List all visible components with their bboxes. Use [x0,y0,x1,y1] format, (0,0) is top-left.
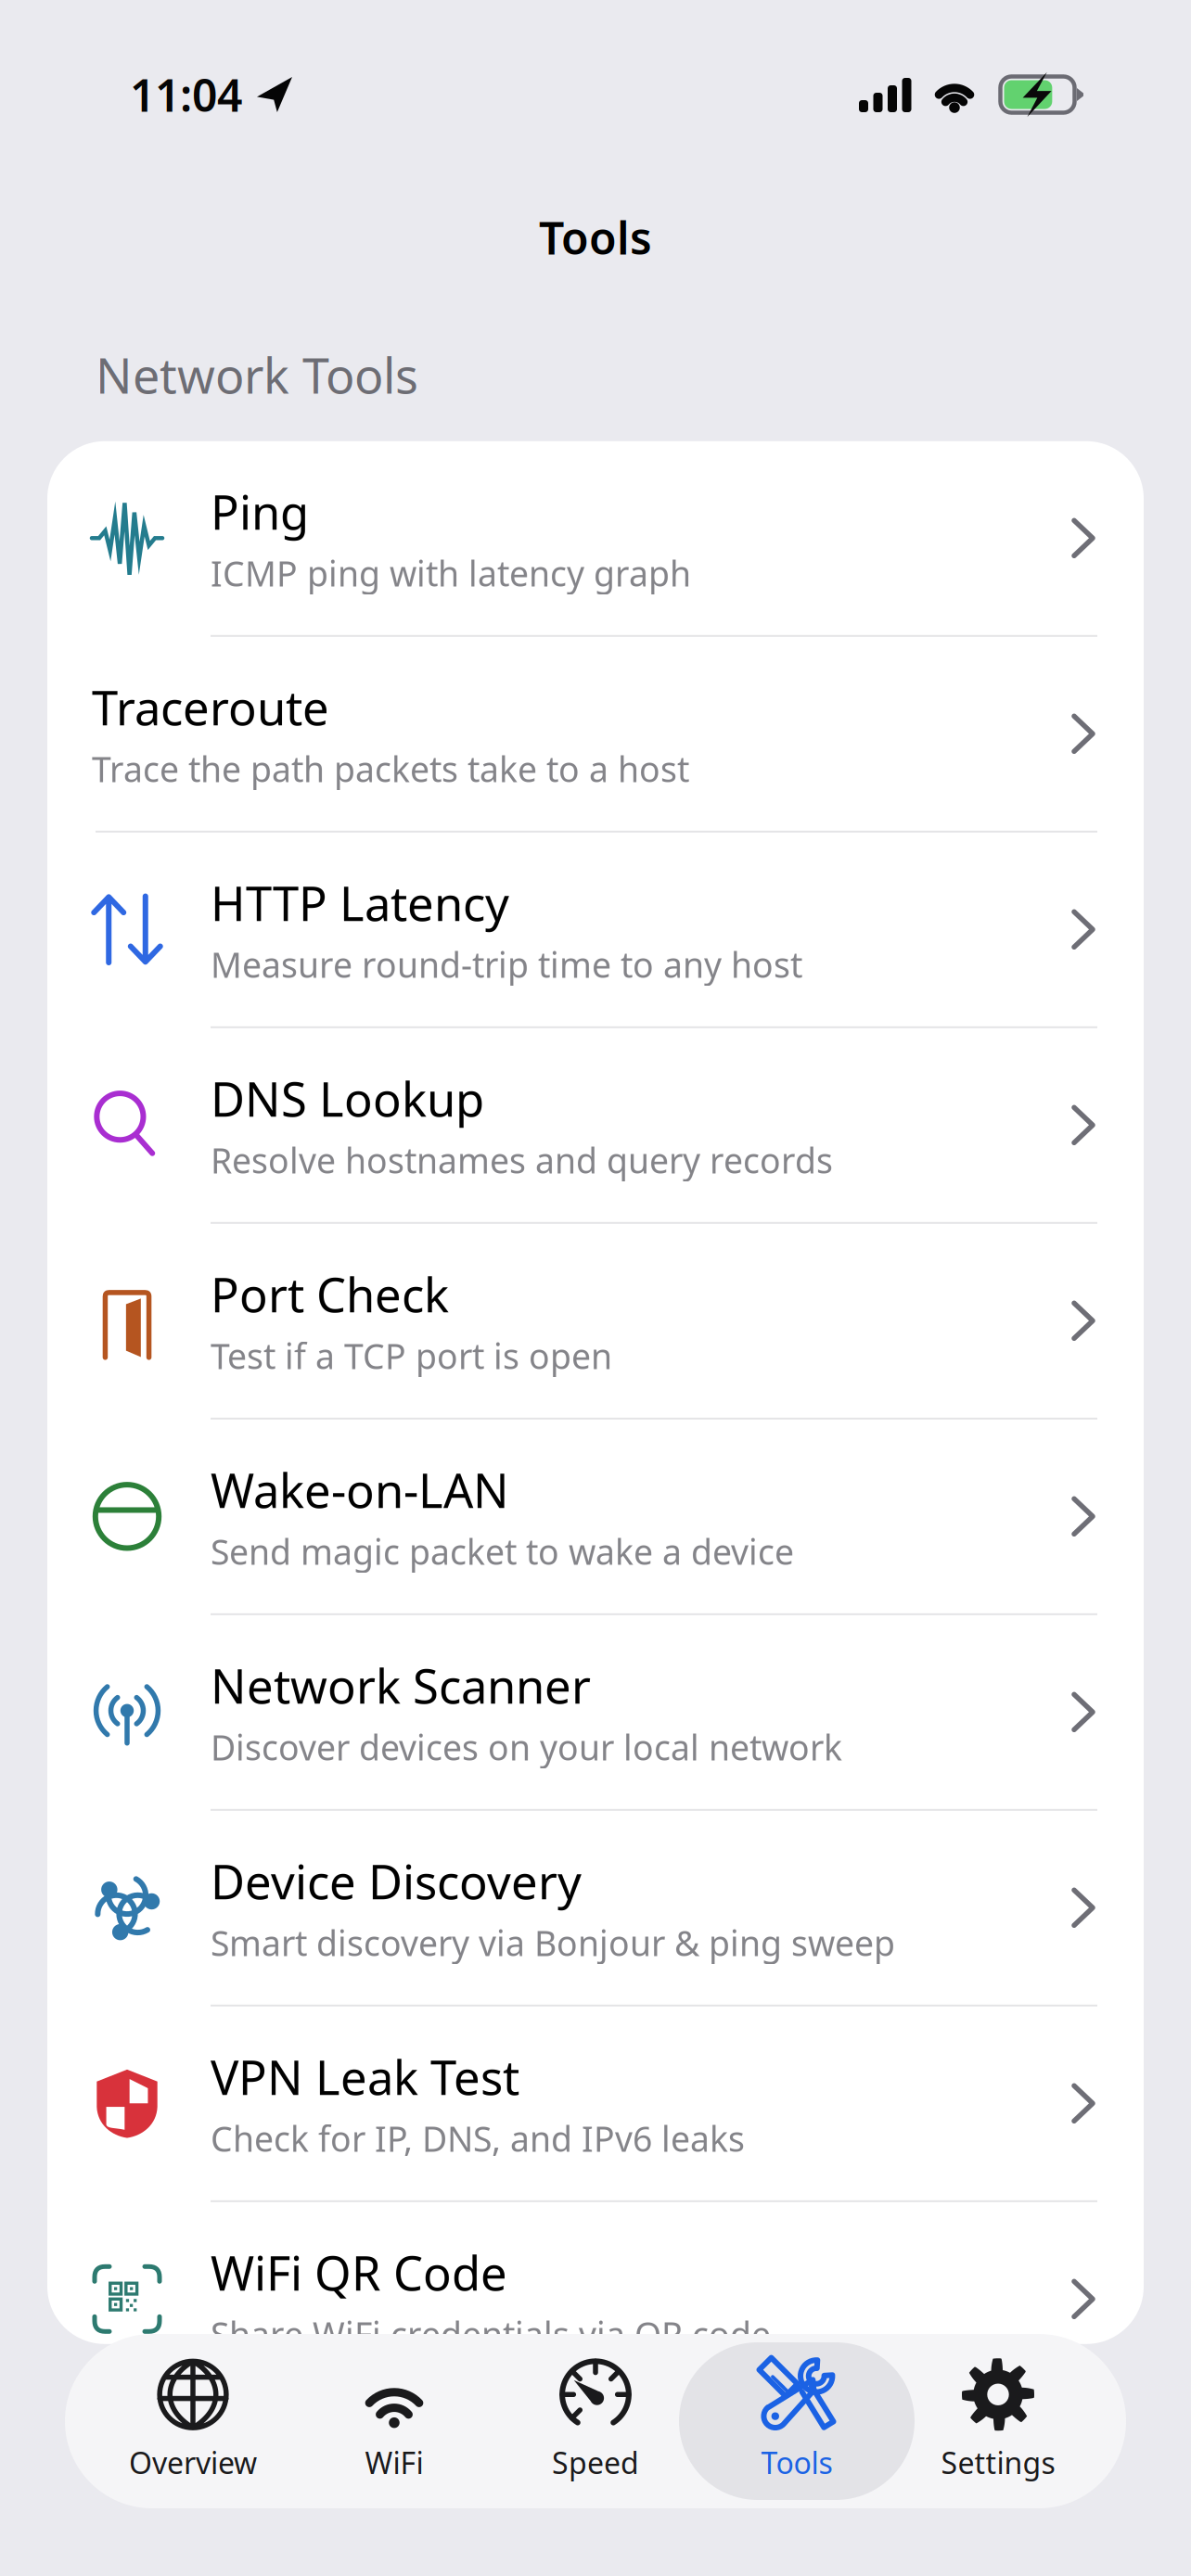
staticText: Network Tools [96,343,418,407]
button[interactable]: Device Discovery [47,1811,1144,2006]
staticText: Speed [552,2443,639,2482]
button[interactable]: DNS Lookup [47,1028,1144,1224]
staticText: DNS Lookup [211,1067,484,1130]
staticText: ICMP ping with latency graph [211,550,691,596]
staticText: Traceroute [92,676,329,738]
staticText: Check for IP, DNS, and IPv6 leaks [211,2115,745,2161]
button[interactable]: Wake-on-LAN [47,1419,1144,1615]
staticText: Port Check [211,1263,449,1325]
staticText: HTTP Latency [211,872,509,934]
button[interactable]: Network Scanner [47,1615,1144,1811]
button[interactable]: Port Check [47,1224,1144,1419]
staticText: WiFi QR Code [211,2241,507,2304]
staticText: Device Discovery [211,1850,582,1912]
button[interactable]: Settings [880,2342,1116,2500]
button[interactable]: Overview [75,2342,311,2500]
staticText: Overview [129,2443,257,2482]
staticText: Test if a TCP port is open [211,1333,612,1379]
staticText: Send magic packet to wake a device [211,1528,794,1574]
button[interactable]: Traceroute [47,637,1144,833]
staticText: Trace the path packets take to a host [92,746,689,792]
staticText: Tools [761,2443,832,2482]
button[interactable]: WiFi QR Code [47,2202,1144,2396]
button[interactable]: Ping [47,441,1144,637]
staticText: WiFi [365,2443,423,2482]
button[interactable]: WiFi [276,2342,512,2500]
staticText: Resolve hostnames and query records [211,1137,833,1183]
staticText: Wake-on-LAN [211,1459,509,1521]
staticText: Measure round-trip time to any host [211,941,802,987]
staticText: Tools [539,208,652,267]
staticText: Network Scanner [211,1654,591,1717]
button[interactable]: Tools [679,2342,915,2500]
staticText: VPN Leak Test [211,2045,519,2108]
staticText: Settings [941,2443,1055,2482]
staticText: Ping [211,480,309,543]
staticText: Smart discovery via Bonjour & ping sweep [211,1920,895,1966]
staticText: Discover devices on your local network [211,1724,842,1770]
staticText: Share WiFi credentials via QR code [211,2311,771,2357]
button[interactable]: Speed [478,2342,713,2500]
button[interactable]: HTTP Latency [47,833,1144,1028]
button[interactable]: VPN Leak Test [47,2006,1144,2202]
staticText: 11:04 [130,65,242,124]
